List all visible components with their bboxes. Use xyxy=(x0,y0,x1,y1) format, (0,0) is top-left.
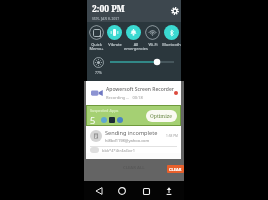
staticText: 77% xyxy=(95,70,102,75)
staticText: Bluetooth xyxy=(162,42,181,47)
button[interactable]: Quick Memo+ xyxy=(87,22,105,52)
button[interactable]: Sending incomplete xyxy=(86,126,181,146)
button[interactable]: Share xyxy=(160,182,178,200)
button[interactable]: Wi-Fi xyxy=(143,22,162,52)
staticText: Optimize xyxy=(150,113,173,120)
staticText: 2:00 PM xyxy=(92,3,125,15)
staticText: SUN, JAN 8, 2017 xyxy=(92,16,120,21)
button[interactable]: bbk*4*4tr4aGor1 xyxy=(86,147,181,153)
button[interactable]: Brightness xyxy=(87,56,109,75)
button[interactable]: Suspected Apps xyxy=(87,106,180,125)
button[interactable]: All emergencies xyxy=(124,22,143,52)
button[interactable]: Back xyxy=(90,182,108,200)
staticText: CLEAR ALL xyxy=(123,165,145,171)
staticText: Sending incomplete xyxy=(105,129,158,137)
button[interactable]: Home xyxy=(113,182,131,200)
staticText: Quick Memo+ xyxy=(89,42,104,52)
staticText: hi8bd1198@yahoo.com xyxy=(105,138,150,143)
button[interactable]: Apowersoft Screen Recorder xyxy=(86,81,181,105)
staticText: CLEAR xyxy=(169,167,182,172)
button[interactable]: CLEAR xyxy=(167,165,184,173)
button[interactable]: Optimize xyxy=(146,110,177,122)
button[interactable]: Vibrate xyxy=(105,22,124,52)
staticText: Wi-Fi xyxy=(148,42,158,47)
button[interactable]: CLEAR ALL xyxy=(123,165,145,171)
staticText: bbk*4*4tr4aGor1 xyxy=(102,148,135,153)
staticText: Vibrate xyxy=(108,42,122,47)
button[interactable]: Bluetooth xyxy=(162,22,181,52)
button[interactable]: Recent apps xyxy=(137,182,155,200)
button[interactable]: Settings xyxy=(169,5,181,17)
staticText: All emergencies xyxy=(124,42,143,52)
button[interactable]: Brightness slider xyxy=(110,56,174,80)
staticText: Apowersoft Screen Recorder xyxy=(106,86,174,93)
staticText: Recording ... 00:18 xyxy=(106,95,143,100)
staticText: 1:58 PM xyxy=(166,134,178,138)
staticText: Suspected Apps xyxy=(90,108,119,113)
staticText: 5 xyxy=(90,114,96,125)
